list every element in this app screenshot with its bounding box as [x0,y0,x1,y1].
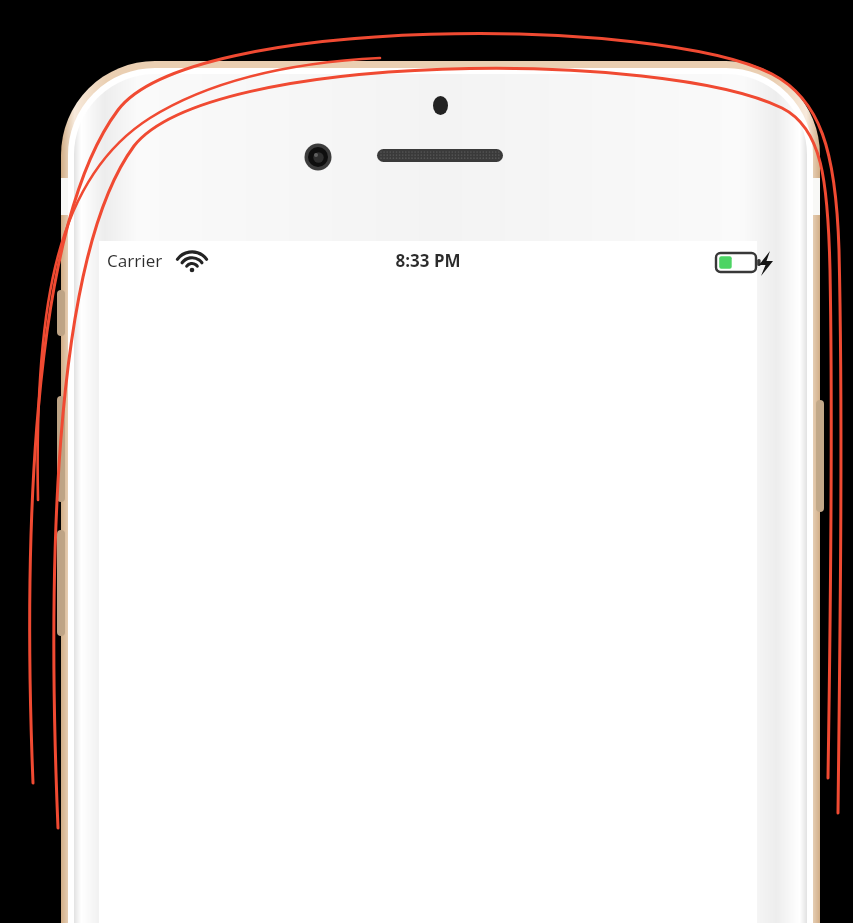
button[interactable]: Carrier [107,249,163,272]
button[interactable]: Wi-Fi signal [176,250,210,276]
button[interactable]: 8:33 PM [328,249,528,272]
staticText: 8:33 PM [328,249,528,272]
button[interactable]: Battery charging [712,248,780,280]
